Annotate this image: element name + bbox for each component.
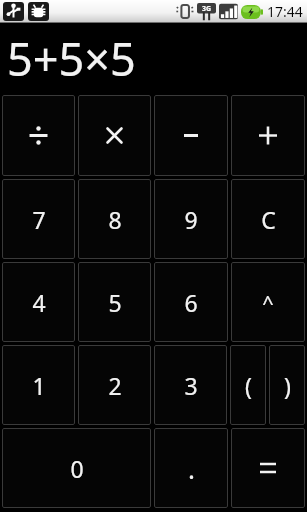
staticText: 1 <box>32 370 46 401</box>
button[interactable]: ) <box>269 345 305 425</box>
staticText: 7 <box>32 204 46 235</box>
staticText: 5 <box>108 287 122 318</box>
button[interactable]: . <box>154 428 228 508</box>
staticText: 4 <box>32 287 46 318</box>
staticText: 3 <box>184 370 198 401</box>
staticText: 0 <box>70 453 84 484</box>
staticText: 8 <box>108 204 122 235</box>
button[interactable]: ^ <box>231 262 305 342</box>
staticText: 9 <box>184 204 198 235</box>
button[interactable]: 3 <box>154 345 227 425</box>
button[interactable]: 5 <box>78 262 151 342</box>
button[interactable]: 9 <box>154 179 228 259</box>
staticText: 6 <box>184 287 198 318</box>
staticText: 5+5×5 <box>7 28 136 89</box>
button[interactable]: 1 <box>2 345 75 425</box>
button[interactable]: 8 <box>78 179 151 259</box>
button[interactable]: Equals <box>231 428 305 508</box>
button[interactable]: ( <box>230 345 266 425</box>
button[interactable]: Plus <box>231 95 305 176</box>
staticText: ( <box>245 370 252 401</box>
staticText: 3G <box>202 4 212 14</box>
button[interactable]: Divide <box>2 95 75 176</box>
staticText: . <box>188 451 195 486</box>
button[interactable]: 7 <box>2 179 75 259</box>
staticText: C <box>261 204 276 235</box>
button[interactable]: Multiply <box>78 95 151 176</box>
button[interactable]: C <box>231 179 305 259</box>
staticText: ^ <box>262 289 274 316</box>
button[interactable]: 6 <box>154 262 228 342</box>
button[interactable]: 2 <box>78 345 151 425</box>
staticText: ) <box>284 370 291 401</box>
staticText: 17:44 <box>267 2 303 21</box>
button[interactable]: 0 <box>2 428 151 508</box>
button[interactable]: Minus <box>154 95 228 176</box>
staticText: 2 <box>108 370 122 401</box>
button[interactable]: 4 <box>2 262 75 342</box>
